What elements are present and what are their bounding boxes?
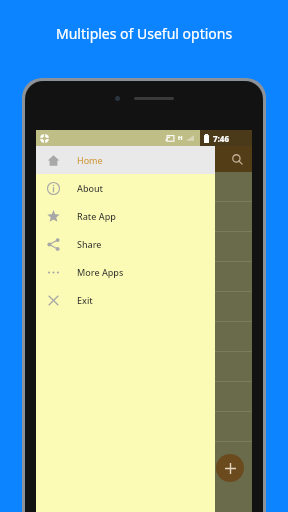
staticText: H xyxy=(178,134,183,142)
staticText: Multiples of Useful options xyxy=(56,24,233,43)
button[interactable] xyxy=(36,352,252,382)
button[interactable] xyxy=(36,232,252,262)
button[interactable]: Rate App xyxy=(36,202,215,230)
button[interactable]: Add xyxy=(216,454,244,482)
button[interactable] xyxy=(36,292,252,322)
button[interactable] xyxy=(36,202,252,232)
staticText: Exit xyxy=(77,294,93,306)
button[interactable]: Share xyxy=(36,230,215,258)
staticText: About xyxy=(77,182,104,194)
staticText: Today xyxy=(44,181,71,193)
staticText: Share xyxy=(77,238,102,250)
staticText: 7:46 xyxy=(213,133,229,144)
button[interactable]: About xyxy=(36,174,215,202)
button[interactable] xyxy=(36,322,252,352)
button[interactable]: More Apps xyxy=(36,258,215,286)
button[interactable]: Search xyxy=(224,146,250,172)
button[interactable]: Home xyxy=(36,146,215,174)
button[interactable] xyxy=(36,412,252,442)
button[interactable]: Exit xyxy=(36,286,215,314)
button[interactable]: Today xyxy=(36,172,252,202)
button[interactable] xyxy=(36,382,252,412)
staticText: Home xyxy=(77,154,103,166)
staticText: More Apps xyxy=(77,266,124,278)
button[interactable] xyxy=(36,262,252,292)
staticText: Rate App xyxy=(77,210,116,222)
